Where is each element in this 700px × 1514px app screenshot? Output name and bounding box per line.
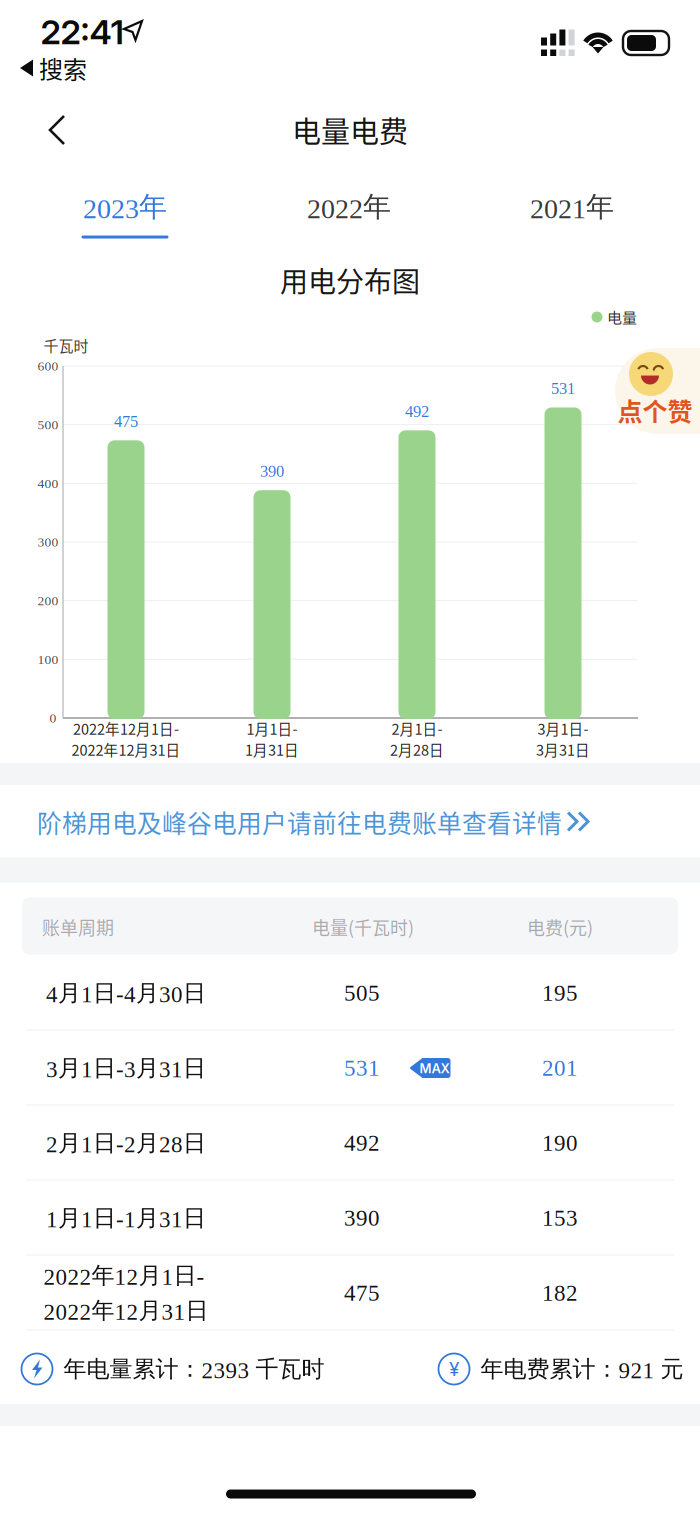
staticText: 22:41 <box>40 11 123 52</box>
staticText: 阶梯用电及峰谷电用户请前往电费账单查看详情 <box>37 804 562 840</box>
staticText: 2022年12月1日- <box>43 1261 204 1290</box>
staticText: 200 <box>37 593 58 608</box>
staticText: 电量 <box>607 306 637 328</box>
staticText: 3月31日 <box>536 739 590 760</box>
staticText: 201 <box>542 1055 578 1081</box>
staticText: 2月1日-2月28日 <box>46 1128 206 1157</box>
staticText: ¥ <box>449 1357 459 1380</box>
button[interactable] <box>26 1031 674 1104</box>
staticText: 475 <box>344 1280 380 1306</box>
staticText: 2022年12月1日- <box>73 718 179 739</box>
staticText: 505 <box>344 980 380 1006</box>
staticText: 390 <box>260 462 284 480</box>
staticText: 2022年12月31日 <box>43 1296 208 1325</box>
staticText: 492 <box>344 1130 380 1156</box>
button[interactable]: 返回搜索 <box>5 45 97 91</box>
staticText: 2022年 <box>307 189 391 225</box>
staticText: 300 <box>37 534 58 549</box>
staticText: 电费(元) <box>527 914 593 940</box>
staticText: 500 <box>37 417 58 432</box>
staticText: 1月31日 <box>245 739 299 760</box>
staticText: 电量电费 <box>292 109 408 151</box>
staticText: 2022年12月31日 <box>71 739 180 760</box>
staticText: 点个赞 <box>617 392 692 428</box>
staticText: 153 <box>542 1205 578 1231</box>
staticText: 2021年 <box>530 189 614 225</box>
staticText: 用电分布图 <box>280 260 420 300</box>
staticText: 账单周期 <box>42 914 114 940</box>
staticText: 475 <box>114 412 138 430</box>
button[interactable]: 2022年 <box>254 175 444 247</box>
staticText: 电量(千瓦时) <box>312 914 414 940</box>
button[interactable]: 点个赞 <box>615 348 700 434</box>
button[interactable]: 返回 <box>26 97 88 163</box>
button[interactable]: 2021年 <box>477 175 667 247</box>
button[interactable] <box>26 956 674 1029</box>
button[interactable]: 阶梯用电及峰谷电用户请前往电费账单查看详情 <box>21 786 606 858</box>
staticText: 千瓦时 <box>43 334 88 356</box>
staticText: 531 <box>551 379 575 398</box>
staticText: 100 <box>37 652 58 667</box>
button[interactable] <box>26 1181 674 1254</box>
staticText: 年电量累计：2393 千瓦时 <box>63 1354 324 1383</box>
staticText: 2月1日- <box>391 718 442 739</box>
button[interactable] <box>26 1256 674 1329</box>
button[interactable]: 2023年 <box>30 175 220 247</box>
staticText: 3月1日-3月31日 <box>46 1053 206 1082</box>
staticText: 531 <box>344 1055 380 1081</box>
staticText: 0 <box>49 710 56 725</box>
staticText: 182 <box>542 1280 578 1306</box>
staticText: 2023年 <box>83 189 167 225</box>
staticText: MAX <box>419 1061 449 1076</box>
staticText: 3月1日- <box>537 718 588 739</box>
button[interactable] <box>26 1106 674 1179</box>
staticText: 2月28日 <box>390 739 444 760</box>
staticText: 400 <box>37 476 58 491</box>
staticText: 4月1日-4月30日 <box>46 978 206 1007</box>
staticText: 492 <box>405 402 429 420</box>
staticText: 搜索 <box>39 51 87 85</box>
staticText: 600 <box>37 358 58 373</box>
staticText: 1月1日- <box>246 718 297 739</box>
staticText: 390 <box>344 1205 380 1231</box>
staticText: 1月1日-1月31日 <box>46 1203 206 1232</box>
staticText: 年电费累计：921 元 <box>480 1354 683 1383</box>
staticText: 190 <box>542 1130 578 1156</box>
staticText: 195 <box>542 980 578 1006</box>
